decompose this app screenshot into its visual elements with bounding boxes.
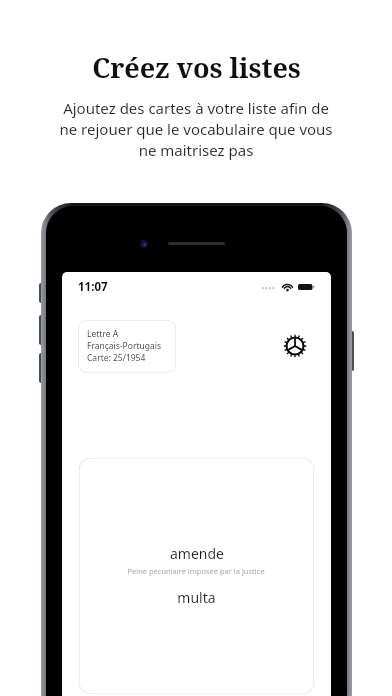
button[interactable]: Lettre A <box>78 320 176 373</box>
staticText: Peine pécuniaire imposée par la justice. <box>127 566 267 576</box>
staticText: Carte: 25/1954 <box>87 352 146 364</box>
staticText: amende <box>170 544 224 563</box>
staticText: 11:07 <box>78 279 108 295</box>
staticText: Ajoutez des cartes à votre liste afin de… <box>59 98 333 161</box>
button[interactable]: Settings <box>276 327 314 365</box>
staticText: Créez vos listes <box>92 49 301 86</box>
staticText: multa <box>177 588 216 607</box>
staticText: Lettre A <box>87 328 119 340</box>
button[interactable]: amende <box>79 458 314 694</box>
staticText: Français-Portugais <box>87 340 162 352</box>
